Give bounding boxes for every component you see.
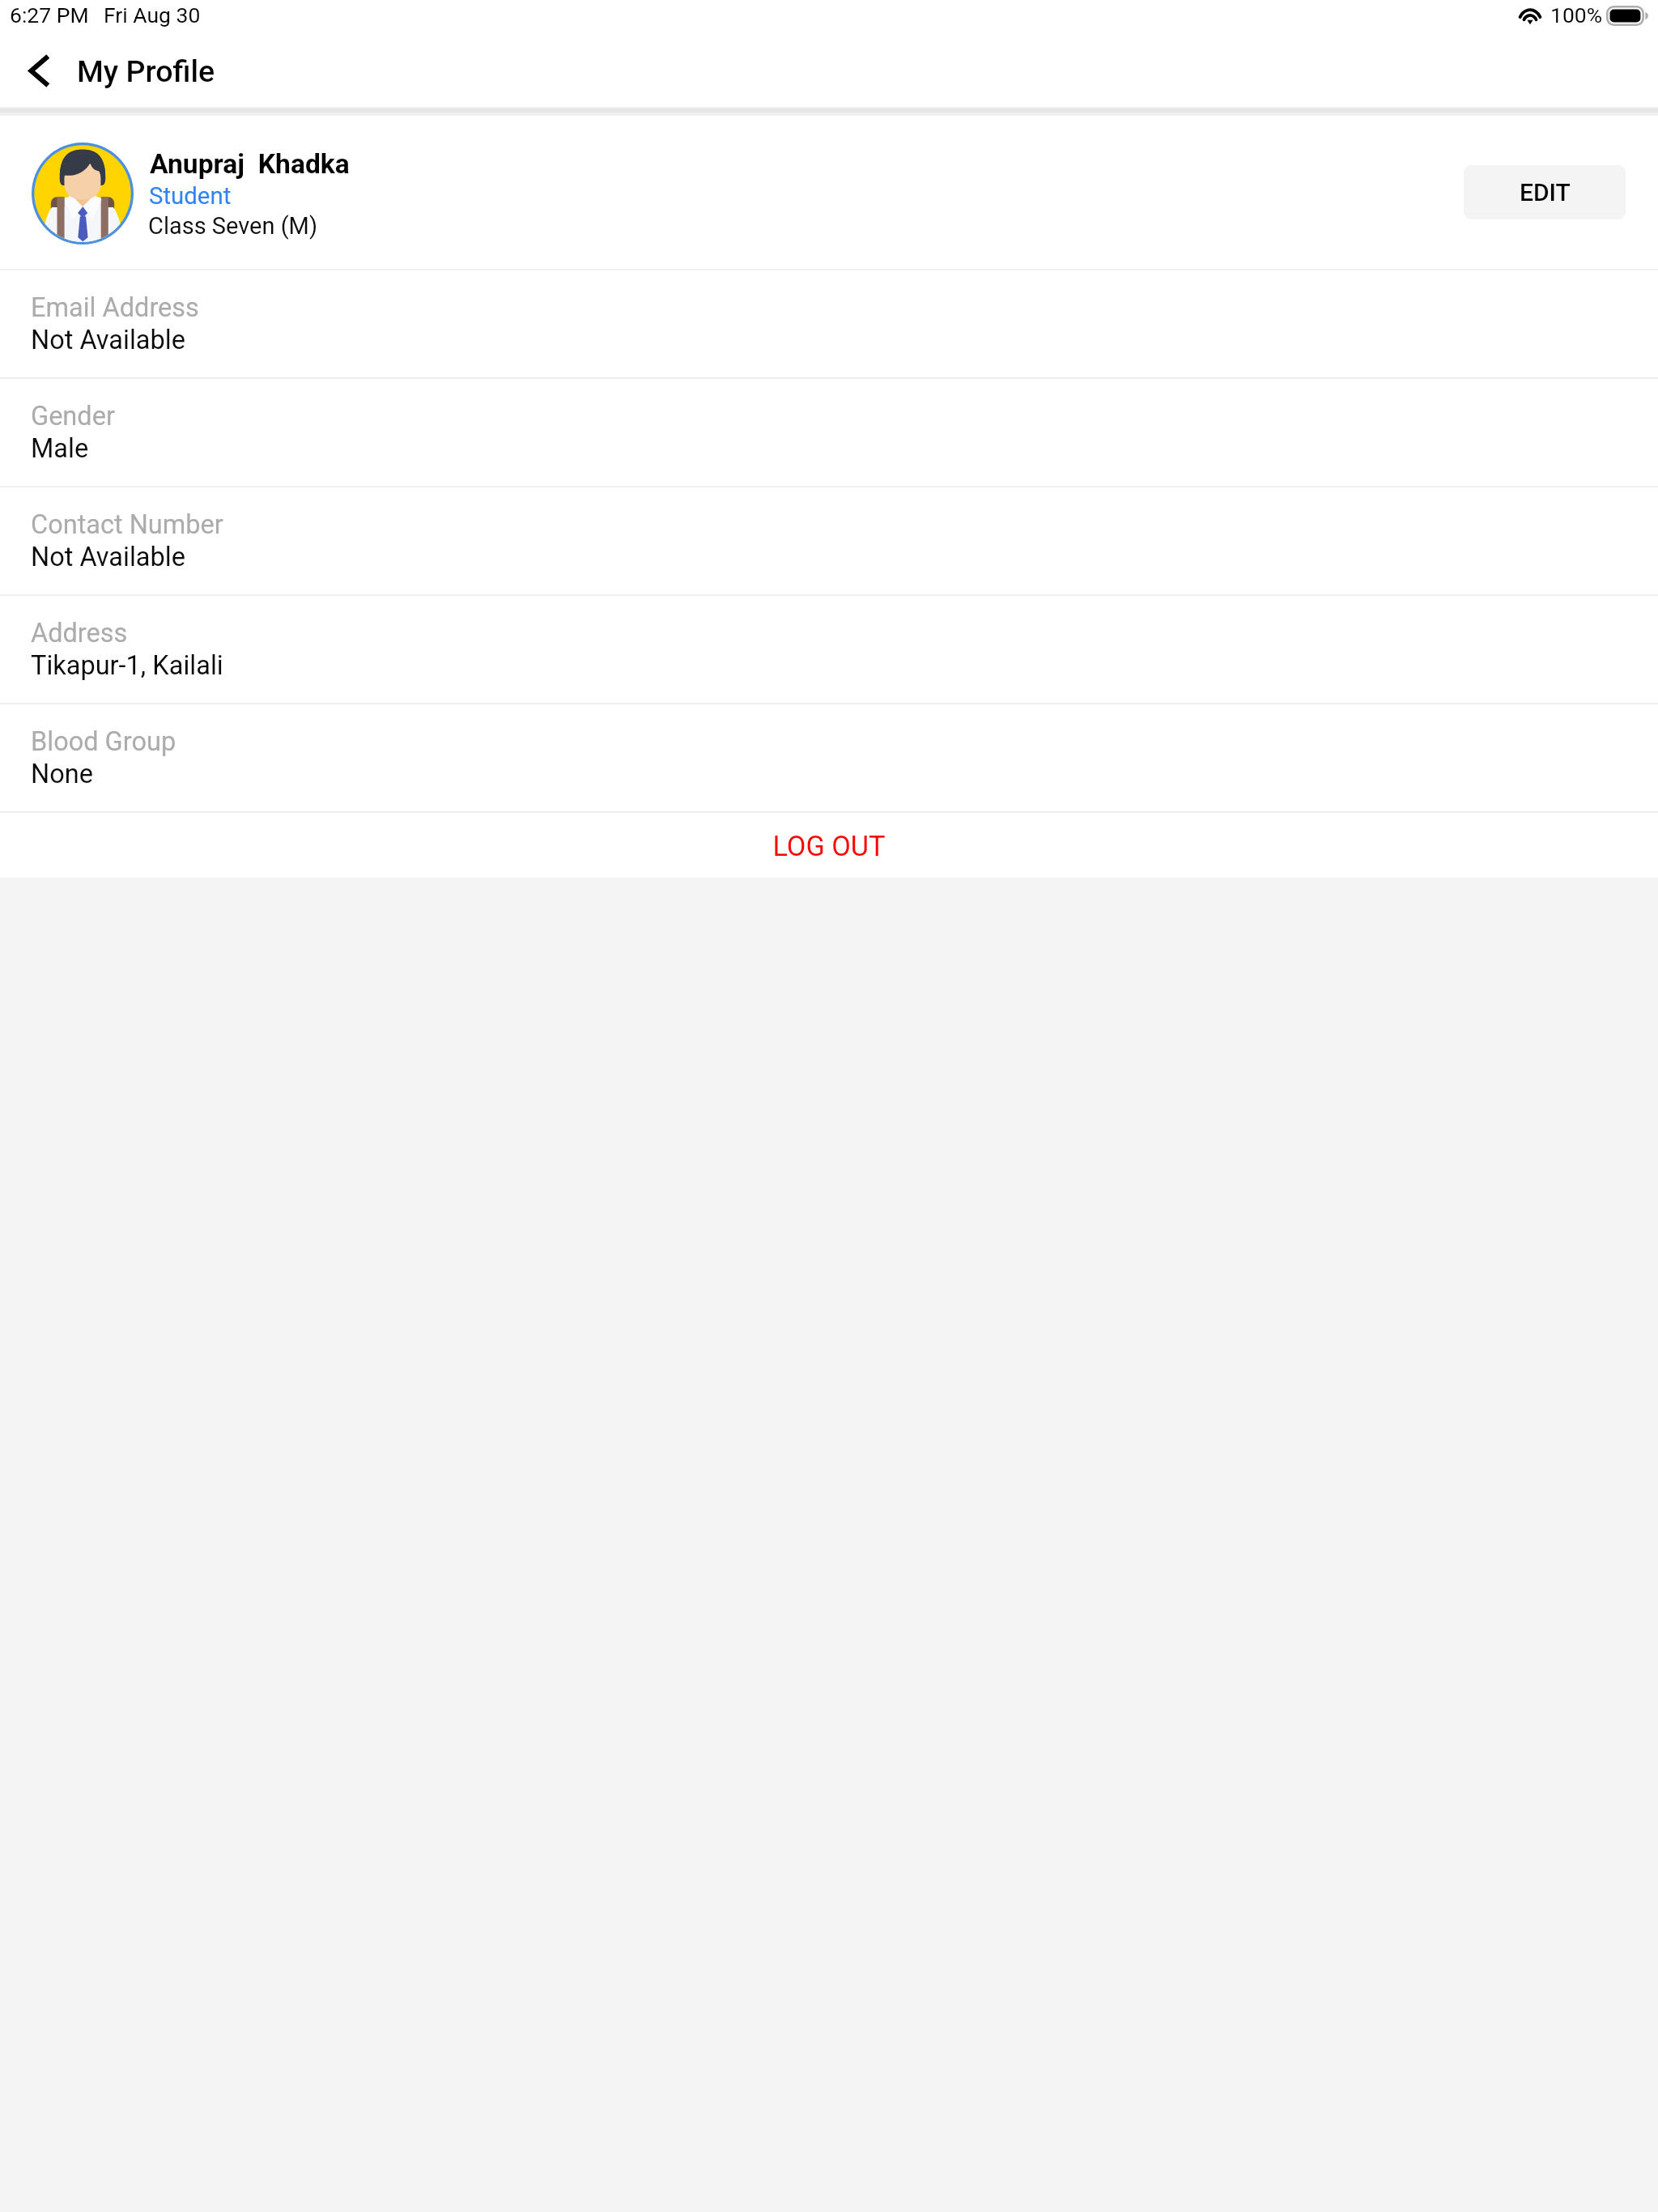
staticText: My Profile [77, 53, 215, 89]
staticText: Gender [31, 401, 115, 432]
staticText: Email Address [31, 292, 199, 323]
staticText: LOG OUT [772, 830, 886, 862]
staticText: Anupraj Khadka [150, 148, 350, 180]
button[interactable]: Blood Group [0, 704, 1658, 811]
staticText: Address [31, 618, 128, 649]
staticText: Male [31, 433, 89, 464]
staticText: Student [149, 182, 232, 210]
button[interactable]: Back [8, 40, 70, 102]
staticText: Class Seven (M) [148, 212, 318, 240]
button[interactable]: Contact Number [0, 487, 1658, 594]
staticText: None [31, 759, 93, 789]
staticText: EDIT [1520, 178, 1571, 206]
staticText: Contact Number [31, 509, 223, 540]
staticText: Not Available [31, 542, 185, 572]
staticText: Fri Aug 30 [104, 2, 201, 28]
staticText: 6:27 PM [10, 2, 89, 28]
staticText: Blood Group [31, 726, 176, 757]
staticText: Tikapur-1, Kailali [31, 650, 223, 681]
staticText: 100% [1550, 2, 1603, 28]
button[interactable]: EDIT [1464, 165, 1626, 219]
staticText: Not Available [31, 325, 185, 355]
button[interactable]: LOG OUT [0, 813, 1658, 878]
button[interactable]: Email Address [0, 270, 1658, 377]
button[interactable]: Gender [0, 379, 1658, 486]
button[interactable]: Address [0, 596, 1658, 703]
